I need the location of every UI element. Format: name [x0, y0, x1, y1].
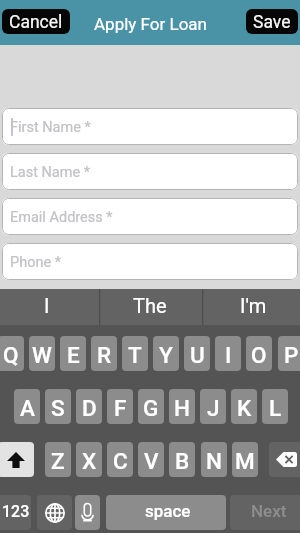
button[interactable]: A	[14, 389, 40, 424]
staticText: G	[143, 395, 159, 421]
button[interactable]: X	[76, 442, 102, 477]
button[interactable]: B	[169, 442, 195, 477]
button[interactable]: I'm	[200, 289, 300, 325]
staticText: T	[128, 342, 142, 368]
button[interactable]: Shift	[0, 442, 34, 477]
button[interactable]: Change keyboard language	[37, 495, 72, 530]
staticText: K	[237, 395, 252, 421]
staticText: J	[207, 395, 220, 421]
button[interactable]: First Name *	[2, 108, 298, 145]
button[interactable]: Next	[230, 495, 300, 530]
button[interactable]: H	[169, 389, 195, 424]
button[interactable]: The	[100, 289, 200, 325]
staticText: V	[144, 448, 159, 474]
button[interactable]: Q	[0, 336, 24, 371]
staticText: Last Name *	[10, 164, 90, 181]
button[interactable]: G	[138, 389, 164, 424]
staticText: Apply For Loan	[94, 14, 207, 34]
button[interactable]: W	[29, 336, 55, 371]
staticText: D	[82, 395, 97, 421]
staticText: Z	[51, 448, 65, 474]
staticText: Q	[3, 342, 19, 368]
staticText: Y	[159, 342, 173, 368]
staticText: Phone *	[10, 254, 61, 271]
staticText: P	[284, 342, 299, 368]
button[interactable]: Voice input	[75, 495, 100, 530]
button[interactable]: C	[107, 442, 133, 477]
button[interactable]: I	[0, 289, 100, 325]
button[interactable]: D	[76, 389, 102, 424]
button[interactable]: Backspace	[269, 442, 300, 477]
staticText: F	[114, 395, 127, 421]
button[interactable]: K	[231, 389, 257, 424]
button[interactable]: L	[262, 389, 288, 424]
staticText: A	[20, 395, 35, 421]
button[interactable]: Z	[45, 442, 71, 477]
button[interactable]: Numbers and symbols	[0, 495, 31, 530]
staticText: First Name *	[10, 119, 91, 136]
staticText: U	[190, 342, 205, 368]
button[interactable]: P	[278, 336, 300, 371]
staticText: R	[97, 342, 112, 368]
button[interactable]: Email Address *	[2, 198, 298, 235]
staticText: I	[225, 342, 232, 368]
button[interactable]: I	[215, 336, 241, 371]
button[interactable]: N	[201, 442, 227, 477]
staticText: X	[82, 448, 97, 474]
staticText: Save	[253, 12, 291, 33]
staticText: W	[32, 342, 52, 368]
button[interactable]: Cancel	[2, 9, 70, 34]
button[interactable]: F	[107, 389, 133, 424]
button[interactable]: R	[91, 336, 117, 371]
staticText: O	[251, 342, 267, 368]
staticText: I	[44, 294, 50, 317]
button[interactable]: space	[106, 495, 226, 530]
staticText: N	[206, 448, 222, 474]
button[interactable]: U	[184, 336, 210, 371]
button[interactable]: S	[45, 389, 71, 424]
button[interactable]: O	[246, 336, 272, 371]
button[interactable]: Last Name *	[2, 153, 298, 190]
staticText: E	[67, 342, 80, 368]
button[interactable]: E	[60, 336, 86, 371]
button[interactable]: T	[122, 336, 148, 371]
button[interactable]: J	[200, 389, 226, 424]
staticText: 123	[2, 502, 30, 521]
button[interactable]: M	[232, 442, 258, 477]
staticText: Next	[251, 501, 287, 521]
button[interactable]: Save	[246, 9, 298, 34]
button[interactable]: V	[138, 442, 164, 477]
staticText: Cancel	[9, 12, 63, 33]
staticText: Email Address *	[10, 209, 113, 226]
staticText: M	[235, 448, 255, 474]
staticText: B	[175, 448, 190, 474]
staticText: space	[145, 501, 191, 521]
staticText: L	[269, 395, 282, 421]
staticText: I'm	[240, 294, 267, 317]
staticText: C	[113, 448, 128, 474]
staticText: The	[133, 294, 167, 317]
staticText: H	[174, 395, 190, 421]
button[interactable]: Phone *	[2, 243, 298, 280]
staticText: S	[51, 395, 65, 421]
button[interactable]: Y	[153, 336, 179, 371]
